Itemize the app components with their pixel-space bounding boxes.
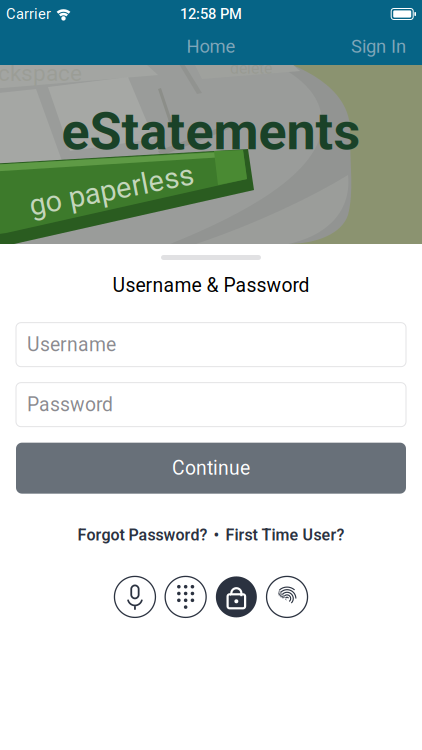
staticText: Password [27,393,113,416]
staticText: Home [186,36,235,57]
staticText: First Time User? [225,526,344,544]
button[interactable]: Home [176,30,245,63]
button[interactable]: Touch ID [267,576,308,617]
staticText: ckspace [0,60,82,87]
staticText: Username [27,333,116,356]
staticText: Forgot Password? [77,526,207,544]
staticText: 12:58 PM [180,5,242,23]
staticText: Continue [172,457,250,479]
staticText: go paperless [28,173,195,207]
button[interactable]: Forgot Password? [77,526,207,544]
button[interactable]: Continue [16,443,406,494]
button[interactable]: First Time User? [225,526,344,544]
button[interactable]: Voice sign in [114,576,155,617]
button[interactable]: Sign In [347,30,410,63]
button[interactable]: Password [216,576,257,617]
button[interactable]: Passcode [165,576,206,617]
staticText: Sign In [351,36,406,57]
staticText: • [213,526,219,544]
staticText: Username & Password [112,274,309,297]
staticText: delete [230,59,272,78]
staticText: eStatements [61,101,360,162]
staticText: Carrier [6,5,51,23]
